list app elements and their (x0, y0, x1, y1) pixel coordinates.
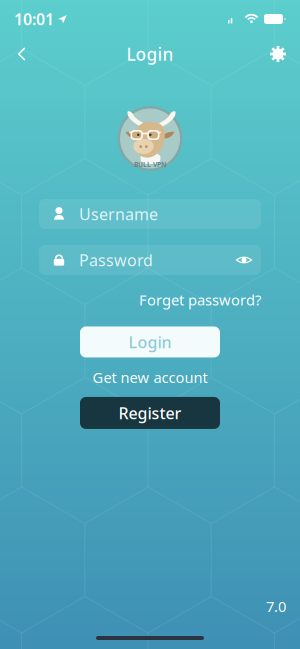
staticText: Login (126, 42, 173, 65)
button[interactable]: Settings (262, 38, 294, 70)
staticText: BULL VPN (134, 160, 166, 169)
staticText: 10:01 (14, 8, 54, 30)
staticText: Password (79, 249, 153, 271)
button[interactable]: Forget password? (139, 287, 261, 312)
button[interactable]: Get new account (92, 364, 207, 390)
staticText: Register (118, 402, 181, 423)
staticText: Get new account (92, 367, 207, 387)
staticText: Username (79, 203, 158, 225)
button[interactable]: Login (80, 326, 220, 357)
button[interactable]: Show password (227, 245, 261, 275)
staticText: Login (128, 331, 171, 353)
button[interactable]: Register (80, 397, 220, 429)
button[interactable]: Back (6, 38, 38, 70)
staticText: 7.0 (266, 596, 286, 616)
staticText: Forget password? (139, 290, 261, 309)
